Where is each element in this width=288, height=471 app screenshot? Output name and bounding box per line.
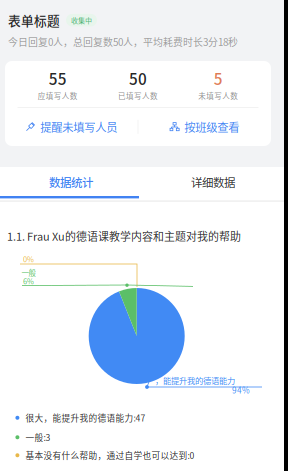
staticText: ，能提升我的德语能力 [155, 374, 235, 386]
button[interactable]: 按班级查看 [138, 108, 271, 146]
staticText: 应填写人数 [38, 90, 78, 101]
staticText: 收集中 [71, 15, 92, 25]
staticText: 已填写人数 [118, 90, 158, 101]
staticText: 数据统计 [49, 174, 93, 190]
staticText: 一般 [21, 267, 35, 278]
staticText: 提醒未填写人员 [40, 119, 117, 135]
button[interactable]: 数据统计 [0, 167, 142, 197]
staticText: 很大，能提升我的德语能力:47 [25, 411, 145, 424]
staticText: 表单标题 [8, 11, 60, 29]
staticText: 55 [49, 67, 67, 89]
staticText: 详细数据 [191, 174, 235, 190]
staticText: 6% [23, 275, 34, 286]
staticText: 今日回复0人，总回复数50人，平均耗费时长3分18秒 [8, 34, 238, 49]
staticText: 0% [23, 253, 34, 264]
button[interactable]: 提醒未填写人员 [5, 108, 138, 146]
staticText: 1.1. Frau Xu的德语课教学内容和主题对我的帮助 [7, 228, 241, 244]
staticText: 未填写人数 [198, 90, 238, 101]
staticText: 按班级查看 [184, 119, 239, 135]
staticText: 5 [214, 67, 223, 89]
staticText: 94% [232, 384, 250, 396]
staticText: 一般:3 [25, 431, 50, 443]
staticText: 50 [129, 67, 147, 89]
button[interactable]: 详细数据 [142, 167, 284, 197]
staticText: 基本没有什么帮助，通过自学也可以达到:0 [25, 449, 194, 461]
